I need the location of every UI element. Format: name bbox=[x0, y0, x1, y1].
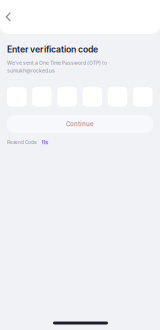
button[interactable]: Resend Code bbox=[7, 139, 48, 146]
button[interactable]: Back bbox=[0, 0, 24, 26]
button[interactable]: Continue bbox=[7, 115, 153, 133]
staticText: 11s bbox=[41, 139, 48, 146]
staticText: Continue bbox=[66, 120, 94, 128]
staticText: Resend Code bbox=[7, 140, 37, 145]
staticText: sumukh@rocked.us bbox=[7, 68, 55, 74]
staticText: Enter verification code bbox=[7, 44, 98, 54]
staticText: We've sent a One Time Password (OTP) to bbox=[7, 60, 107, 66]
